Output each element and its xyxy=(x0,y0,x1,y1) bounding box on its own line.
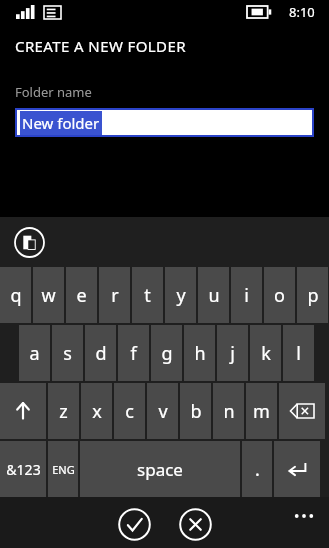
staticText: t xyxy=(144,283,151,308)
staticText: u xyxy=(208,283,220,308)
button[interactable]: More options xyxy=(291,509,317,523)
staticText: x xyxy=(92,399,102,424)
button[interactable]: space xyxy=(80,441,240,497)
button[interactable]: p xyxy=(297,267,328,323)
staticText: w xyxy=(41,283,56,308)
button[interactable]: x xyxy=(81,383,112,439)
button[interactable]: e xyxy=(66,267,97,323)
staticText: Folder name xyxy=(15,83,92,101)
staticText: c xyxy=(125,399,134,424)
button[interactable]: Accept xyxy=(118,508,151,541)
button[interactable]: b xyxy=(180,383,211,439)
button[interactable]: Enter xyxy=(274,441,320,497)
button[interactable]: Backspace xyxy=(279,383,325,439)
button[interactable]: Paste xyxy=(14,227,45,258)
button[interactable]: d xyxy=(85,325,116,381)
button[interactable]: &123 xyxy=(0,441,46,497)
button[interactable]: h xyxy=(184,325,215,381)
staticText: n xyxy=(223,399,235,424)
staticText: CREATE A NEW FOLDER xyxy=(15,36,186,56)
staticText: . xyxy=(255,457,260,482)
button[interactable]: l xyxy=(283,325,314,381)
button[interactable]: y xyxy=(165,267,196,323)
staticText: space xyxy=(137,458,183,481)
button[interactable]: i xyxy=(231,267,262,323)
button[interactable]: m xyxy=(246,383,277,439)
button[interactable]: g xyxy=(151,325,182,381)
button[interactable]: ENG xyxy=(48,441,78,497)
staticText: d xyxy=(95,341,107,366)
staticText: y xyxy=(176,283,186,308)
staticText: ENG xyxy=(52,462,75,477)
button[interactable]: c xyxy=(114,383,145,439)
staticText: h xyxy=(194,341,206,366)
staticText: o xyxy=(274,283,285,308)
staticText: q xyxy=(10,283,22,308)
staticText: p xyxy=(307,283,319,308)
button[interactable]: Cancel xyxy=(179,508,212,541)
staticText: v xyxy=(158,399,168,424)
button[interactable]: w xyxy=(33,267,64,323)
button[interactable]: o xyxy=(264,267,295,323)
button[interactable]: s xyxy=(52,325,83,381)
staticText: New folder xyxy=(22,113,100,133)
button[interactable]: Shift xyxy=(0,383,46,439)
button[interactable]: r xyxy=(99,267,130,323)
staticText: j xyxy=(230,341,235,366)
button[interactable]: n xyxy=(213,383,244,439)
button[interactable]: . xyxy=(242,441,272,497)
staticText: z xyxy=(59,399,68,424)
button[interactable]: f xyxy=(118,325,149,381)
staticText: g xyxy=(161,341,173,366)
button[interactable]: q xyxy=(0,267,31,323)
staticText: b xyxy=(190,399,202,424)
button[interactable]: k xyxy=(250,325,281,381)
button[interactable]: a xyxy=(19,325,50,381)
staticText: a xyxy=(29,341,40,366)
button[interactable]: j xyxy=(217,325,248,381)
staticText: 8:10 xyxy=(289,3,315,21)
button[interactable]: u xyxy=(198,267,229,323)
staticText: i xyxy=(244,283,249,308)
staticText: k xyxy=(261,341,271,366)
staticText: r xyxy=(111,283,119,308)
button[interactable]: v xyxy=(147,383,178,439)
staticText: &123 xyxy=(6,460,41,479)
button[interactable]: t xyxy=(132,267,163,323)
button[interactable]: New folder xyxy=(17,110,312,135)
staticText: l xyxy=(296,341,301,366)
staticText: m xyxy=(253,399,270,424)
staticText: s xyxy=(63,341,72,366)
staticText: f xyxy=(130,341,137,366)
button[interactable]: z xyxy=(48,383,79,439)
staticText: e xyxy=(76,283,87,308)
